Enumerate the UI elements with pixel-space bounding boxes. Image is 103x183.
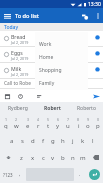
staticText: w <box>14 122 19 130</box>
button[interactable]: 5 <box>43 114 53 132</box>
button[interactable]: Set date <box>2 91 12 101</box>
button[interactable]: Robert <box>35 102 69 114</box>
button[interactable]: Work <box>35 38 88 51</box>
button[interactable]: Shopping <box>35 64 88 77</box>
staticText: t <box>47 122 50 130</box>
staticText: 1 <box>5 117 8 122</box>
staticText: n <box>71 154 75 162</box>
button[interactable]: z <box>16 149 27 166</box>
button[interactable]: v <box>48 149 58 166</box>
staticText: Roberto <box>77 105 96 112</box>
staticText: Work <box>39 41 52 48</box>
staticText: a <box>10 137 14 145</box>
button[interactable]: d <box>28 132 38 149</box>
staticText: Shopping <box>39 67 62 74</box>
button[interactable]: m <box>78 149 88 166</box>
button[interactable]: n <box>68 149 78 166</box>
button[interactable]: f <box>38 132 48 149</box>
staticText: f <box>42 137 45 145</box>
staticText: Robert <box>44 105 61 112</box>
staticText: Call to Robe <box>4 80 31 87</box>
button[interactable]: 3 <box>22 114 33 132</box>
staticText: 2 <box>15 117 18 122</box>
staticText: Jul 2, 2019 <box>11 40 29 45</box>
button[interactable]: 7 <box>63 114 73 132</box>
staticText: Jul 2, 2019 <box>11 72 29 77</box>
staticText: . <box>79 171 81 178</box>
staticText: Jul 2, 2019 <box>11 56 29 61</box>
button[interactable]: g <box>48 132 58 149</box>
staticText: c <box>42 154 45 162</box>
button[interactable]: Rydberg <box>0 102 35 114</box>
staticText: l <box>92 137 94 145</box>
staticText: 7 <box>67 117 70 122</box>
button[interactable]: l <box>88 132 98 149</box>
button[interactable]: 1 <box>0 114 11 132</box>
staticText: k <box>81 137 85 145</box>
button[interactable]: Family <box>35 77 88 90</box>
button[interactable]: . <box>75 166 85 183</box>
staticText: h <box>61 137 65 145</box>
staticText: d <box>31 137 35 145</box>
staticText: x <box>31 154 35 162</box>
button[interactable]: More options <box>92 10 103 21</box>
staticText: Eggs <box>11 49 23 56</box>
staticText: Rydberg <box>8 105 28 112</box>
staticText: g <box>51 137 55 145</box>
button[interactable]: Bread <box>0 31 103 47</box>
button[interactable]: Shift <box>0 149 16 166</box>
button[interactable]: Roberto <box>69 102 103 114</box>
button[interactable]: Labels <box>78 9 92 23</box>
staticText: Milk <box>11 65 22 72</box>
staticText: 3 <box>27 117 30 122</box>
button[interactable]: Send <box>90 90 102 102</box>
staticText: 9 <box>87 117 90 122</box>
staticText: 0 <box>97 117 100 122</box>
staticText: 8 <box>77 117 80 122</box>
button[interactable]: Menu <box>0 8 15 23</box>
staticText: o <box>86 122 90 130</box>
button[interactable]: 2 <box>11 114 22 132</box>
button[interactable]: Sub tasks <box>34 91 44 101</box>
button[interactable]: 6 <box>53 114 63 132</box>
staticText: i <box>78 122 80 130</box>
button[interactable]: Enter <box>89 169 100 180</box>
button[interactable]: 9 <box>83 114 93 132</box>
button[interactable]: Set reminder <box>15 91 25 101</box>
button[interactable]: Eggs <box>0 47 103 63</box>
staticText: b <box>61 154 65 162</box>
button[interactable]: ?123 <box>0 166 15 183</box>
button[interactable]: j <box>68 132 78 149</box>
button[interactable]: x <box>27 149 38 166</box>
button[interactable]: 0 <box>93 114 103 132</box>
button[interactable]: , <box>15 166 25 183</box>
button[interactable]: 8 <box>73 114 83 132</box>
button[interactable]: Backspace <box>88 149 103 166</box>
staticText: q <box>4 122 8 130</box>
button[interactable]: a <box>6 132 17 149</box>
staticText: v <box>51 154 55 162</box>
staticText: Home <box>39 54 54 61</box>
staticText: s <box>21 137 24 145</box>
button[interactable]: s <box>17 132 28 149</box>
button[interactable]: Home <box>35 51 88 64</box>
button[interactable]: k <box>78 132 88 149</box>
button[interactable]: Milk <box>0 63 103 79</box>
staticText: Bread <box>11 33 26 40</box>
staticText: 5 <box>47 117 50 122</box>
button[interactable]: 4 <box>33 114 43 132</box>
staticText: m <box>80 154 86 162</box>
staticText: j <box>72 137 74 145</box>
staticText: e <box>26 122 30 130</box>
button[interactable]: h <box>58 132 68 149</box>
staticText: 13:30 <box>88 1 101 8</box>
staticText: p <box>96 122 100 130</box>
staticText: ?123 <box>3 172 13 178</box>
staticText: , <box>19 171 21 178</box>
button[interactable]: b <box>58 149 68 166</box>
staticText: 4 <box>37 117 40 122</box>
staticText: 6 <box>57 117 60 122</box>
button[interactable]: c <box>38 149 48 166</box>
staticText: y <box>56 122 60 130</box>
